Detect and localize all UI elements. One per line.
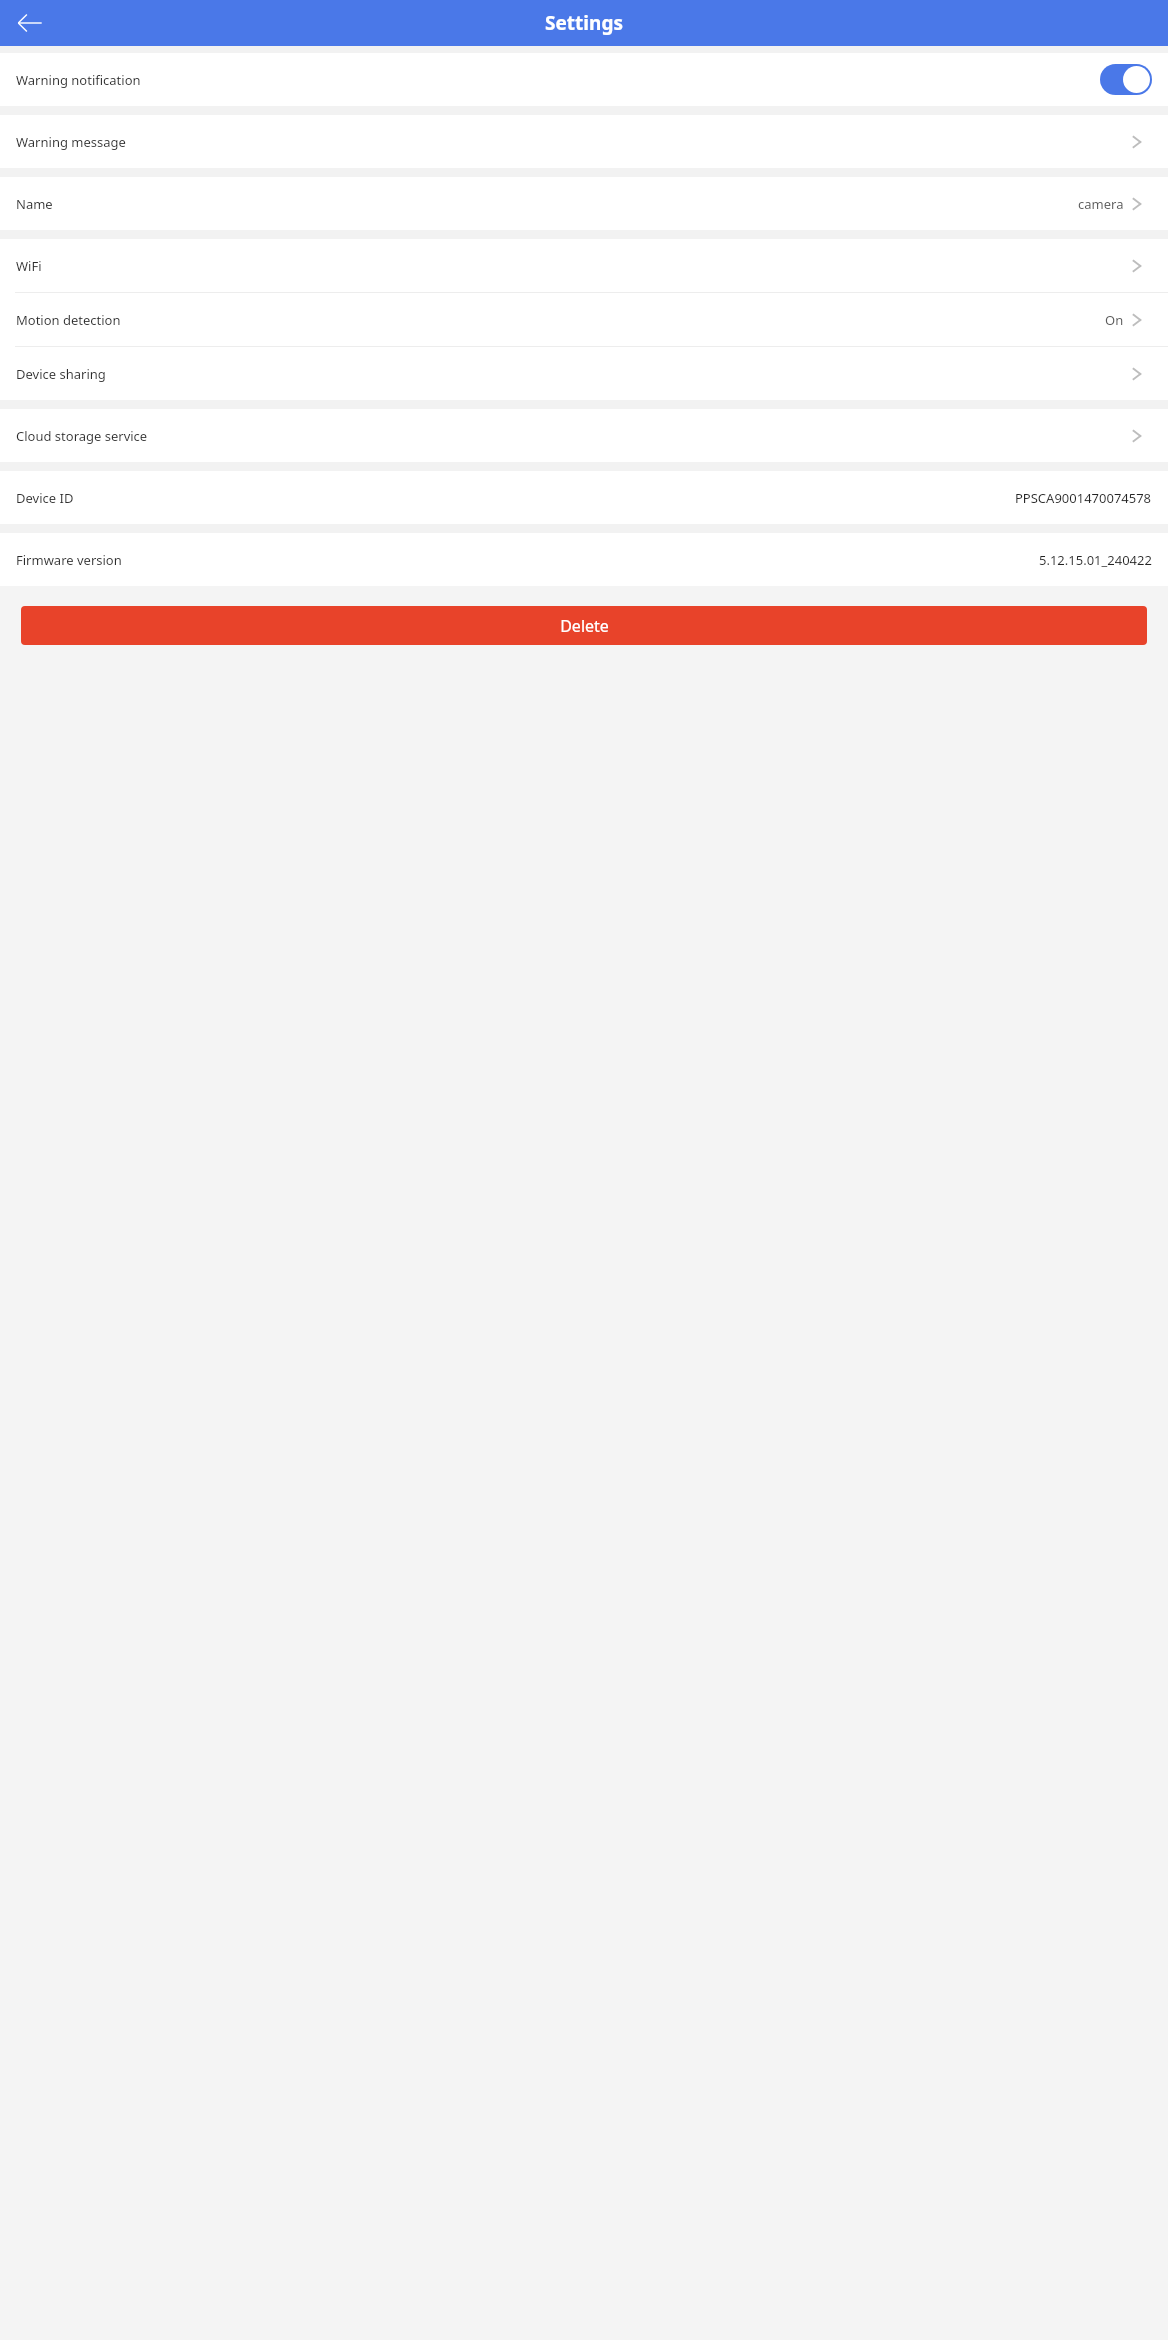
- button[interactable]: Device ID: [0, 471, 1168, 524]
- button[interactable]: WiFi: [0, 239, 1168, 292]
- staticText: Device sharing: [16, 365, 106, 383]
- staticText: Settings: [545, 10, 623, 36]
- button[interactable]: Firmware version: [0, 533, 1168, 586]
- staticText: Delete: [560, 615, 609, 637]
- staticText: Device ID: [16, 489, 74, 507]
- staticText: On: [1105, 311, 1124, 329]
- staticText: Motion detection: [16, 311, 121, 329]
- staticText: Warning message: [16, 133, 126, 151]
- staticText: PPSCA9001470074578: [1015, 489, 1152, 507]
- staticText: Cloud storage service: [16, 427, 148, 445]
- button[interactable]: Cloud storage service: [0, 409, 1168, 462]
- button[interactable]: Warning message: [0, 115, 1168, 168]
- staticText: Warning notification: [16, 71, 141, 89]
- staticText: WiFi: [16, 257, 42, 275]
- button[interactable]: Warning notification: [0, 53, 1168, 106]
- button[interactable]: Device sharing: [0, 347, 1168, 400]
- staticText: 5.12.15.01_240422: [1039, 551, 1152, 569]
- staticText: camera: [1078, 195, 1124, 213]
- button[interactable]: Name: [0, 177, 1168, 230]
- button[interactable]: Delete: [21, 606, 1147, 645]
- staticText: Name: [16, 195, 53, 213]
- staticText: Firmware version: [16, 551, 122, 569]
- button[interactable]: Motion detection: [0, 293, 1168, 346]
- button[interactable]: Back: [8, 1, 52, 45]
- button[interactable]: Warning notification toggle: [1100, 64, 1152, 95]
